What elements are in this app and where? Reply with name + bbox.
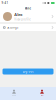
staticText: Mine <box>24 7 31 10</box>
staticText: 9:41 <box>1 1 8 5</box>
button[interactable]: Log out <box>2 68 53 74</box>
button[interactable]: Settings <box>0 24 56 31</box>
staticText: Alex <box>14 12 22 17</box>
staticText: Mine <box>40 94 43 96</box>
button[interactable]: Alex <box>0 11 56 22</box>
staticText: Settings <box>7 26 18 29</box>
button[interactable]: Home <box>0 87 28 100</box>
button[interactable]: Mine <box>28 87 56 100</box>
staticText: View profile <box>14 18 31 21</box>
staticText: Log out <box>22 70 33 73</box>
staticText: Home <box>12 94 16 96</box>
